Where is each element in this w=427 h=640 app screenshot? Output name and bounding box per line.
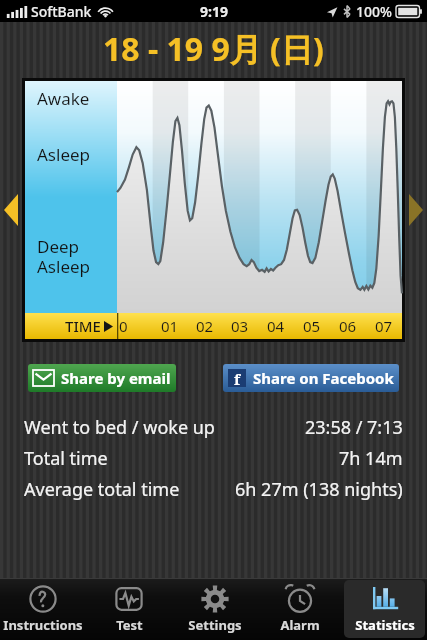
- button[interactable]: Alarm: [259, 580, 340, 638]
- staticText: Share by email: [61, 368, 171, 388]
- button[interactable]: Test: [88, 580, 170, 638]
- staticText: Went to bed / woke up: [24, 415, 215, 440]
- button[interactable]: Next night: [405, 76, 427, 344]
- staticText: 02: [196, 316, 214, 336]
- staticText: Alarm: [280, 616, 320, 634]
- staticText: Deep Asleep: [37, 235, 91, 278]
- staticText: Test: [116, 616, 143, 634]
- staticText: 06: [339, 316, 357, 336]
- staticText: SoftBank: [31, 2, 92, 21]
- staticText: 9:19: [200, 2, 228, 21]
- button[interactable]: Share by email: [28, 364, 176, 392]
- staticText: 100%: [356, 2, 392, 21]
- staticText: Settings: [188, 616, 242, 634]
- staticText: Average total time: [24, 477, 180, 502]
- staticText: Instructions: [3, 616, 83, 634]
- staticText: 18 - 19 9月 (日): [103, 27, 324, 71]
- staticText: 05: [303, 316, 321, 336]
- staticText: Statistics: [355, 616, 415, 634]
- staticText: Awake: [37, 87, 90, 110]
- staticText: Share on Facebook: [253, 368, 394, 388]
- button[interactable]: f: [223, 364, 399, 392]
- staticText: 07: [375, 316, 393, 336]
- staticText: 23:58 / 7:13: [305, 415, 403, 440]
- staticText: 6h 27m (138 nights): [235, 477, 403, 502]
- button[interactable]: Settings: [174, 580, 255, 638]
- staticText: 03: [231, 316, 249, 336]
- staticText: Total time: [24, 446, 108, 471]
- staticText: 04: [267, 316, 285, 336]
- staticText: f: [234, 369, 241, 387]
- staticText: 0: [119, 316, 128, 336]
- staticText: 01: [161, 316, 179, 336]
- button[interactable]: Statistics: [344, 580, 425, 638]
- button[interactable]: Previous night: [0, 76, 22, 344]
- staticText: Asleep: [37, 143, 91, 166]
- staticText: TIME: [65, 316, 101, 336]
- staticText: 7h 14m: [339, 446, 403, 471]
- button[interactable]: Instructions: [2, 580, 84, 638]
